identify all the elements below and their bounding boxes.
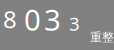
- staticText: 重整: [90, 30, 114, 45]
- staticText: 8: [3, 3, 17, 35]
- button[interactable]: 重整: [90, 30, 114, 45]
- staticText: 3: [44, 0, 61, 39]
- staticText: 3: [69, 11, 80, 36]
- staticText: 0: [24, 0, 41, 39]
